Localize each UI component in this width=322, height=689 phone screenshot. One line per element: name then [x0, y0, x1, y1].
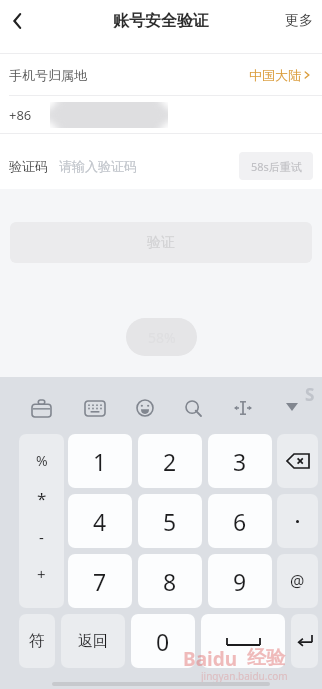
button[interactable]: 58s后重试 [239, 152, 313, 180]
staticText: +86 [9, 106, 32, 124]
button[interactable]: 0 [131, 614, 195, 668]
staticText: Baidu [183, 646, 238, 672]
staticText: 2 [163, 446, 177, 477]
staticText: 更多 [285, 12, 313, 30]
staticText: 返回 [78, 632, 108, 651]
button[interactable] [2, 5, 34, 37]
button[interactable]: @ [277, 554, 318, 608]
staticText: 1 [93, 446, 107, 477]
button[interactable] [281, 396, 303, 418]
staticText: 经验 [247, 646, 285, 670]
staticText: 验证 [147, 234, 175, 252]
staticText: + [37, 564, 46, 584]
staticText: jingyan.baidu.com [201, 669, 288, 683]
button[interactable]: 符 [19, 614, 55, 668]
button[interactable] [277, 494, 318, 548]
button[interactable] [133, 396, 157, 420]
staticText: 验证码 [9, 158, 48, 174]
staticText: * [37, 487, 47, 510]
button[interactable]: 5 [138, 494, 202, 548]
button[interactable] [231, 396, 255, 420]
staticText: 7 [93, 566, 107, 597]
button[interactable] [181, 396, 205, 420]
button[interactable]: 4 [68, 494, 132, 548]
staticText: % [36, 451, 48, 470]
staticText: 中国大陆 [249, 67, 301, 83]
staticText: 0 [156, 626, 170, 657]
button[interactable]: 3 [208, 434, 272, 488]
button[interactable] [83, 396, 107, 420]
button[interactable]: 9 [208, 554, 272, 608]
button[interactable] [201, 614, 285, 668]
staticText: - [39, 527, 44, 547]
staticText: 3 [233, 446, 247, 477]
staticText: 8 [163, 566, 177, 597]
staticText: 6 [233, 506, 247, 537]
staticText: 5 [163, 506, 177, 537]
staticText: 账号安全验证 [113, 11, 209, 31]
button[interactable]: 8 [138, 554, 202, 608]
staticText: 请输入验证码 [59, 158, 137, 174]
staticText: @ [290, 570, 305, 592]
button[interactable]: 返回 [61, 614, 125, 668]
staticText: 手机号归属地 [9, 67, 87, 83]
staticText: 9 [233, 566, 247, 597]
button[interactable] [29, 396, 53, 420]
button[interactable]: +86 [0, 96, 322, 133]
button[interactable]: 6 [208, 494, 272, 548]
button[interactable]: 更多 [285, 12, 313, 30]
staticText: 符 [29, 631, 45, 651]
button[interactable]: 1 [68, 434, 132, 488]
button[interactable]: % [19, 434, 64, 608]
button[interactable]: 7 [68, 554, 132, 608]
button[interactable]: 2 [138, 434, 202, 488]
button[interactable] [291, 614, 318, 668]
staticText: 4 [93, 506, 107, 537]
button[interactable] [277, 434, 318, 488]
button[interactable]: 手机号归属地 [0, 54, 322, 95]
staticText: 58s后重试 [251, 159, 302, 174]
staticText: S [305, 383, 315, 406]
